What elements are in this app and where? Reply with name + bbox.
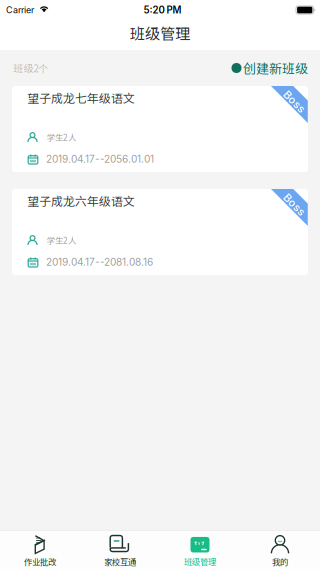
staticText: 班级2个 [13,61,48,75]
staticText: 我的 [272,555,288,568]
button[interactable]: 创建新班级 [231,59,308,77]
staticText: Boss [281,198,307,211]
button[interactable]: 我的 [240,531,320,569]
button[interactable]: 班级管理 [160,531,240,569]
staticText: 作业批改 [24,555,56,568]
button[interactable]: 家校互通 [80,531,160,569]
staticText: 学生2人 [47,131,76,143]
button[interactable]: Boss [12,189,308,275]
staticText: 望子成龙七年级语文 [27,89,135,106]
staticText: 5:20 PM [143,4,181,16]
staticText: Carrier [6,5,34,15]
staticText: 家校互通 [104,555,136,568]
button[interactable]: 作业批改 [0,531,80,569]
staticText: 班级管理 [184,555,216,568]
staticText: 望子成龙六年级语文 [27,192,135,209]
staticText: 创建新班级 [243,59,308,77]
staticText: 2019.04.17--2081.08.16 [46,256,153,268]
staticText: 学生2人 [47,234,76,246]
staticText: 2019.04.17--2056.01.01 [46,153,154,165]
staticText: Boss [281,95,307,108]
staticText: 班级管理 [130,22,190,44]
button[interactable]: Boss [12,86,308,172]
